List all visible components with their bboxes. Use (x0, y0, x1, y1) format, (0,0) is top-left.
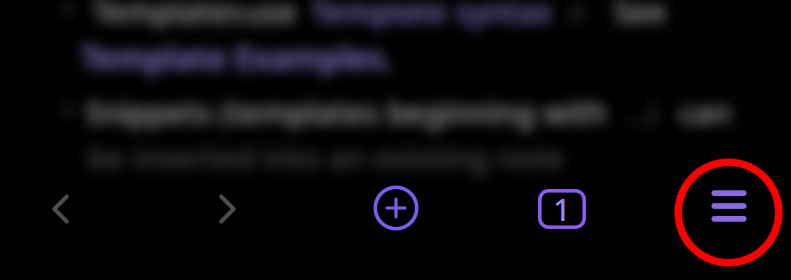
staticText: 1 (553, 189, 571, 229)
button[interactable]: New Tab (372, 184, 420, 232)
button[interactable]: Menu (707, 184, 751, 228)
button[interactable]: Back (41, 189, 81, 229)
button[interactable]: Tabs (536, 187, 588, 231)
button[interactable]: Forward (207, 189, 247, 229)
